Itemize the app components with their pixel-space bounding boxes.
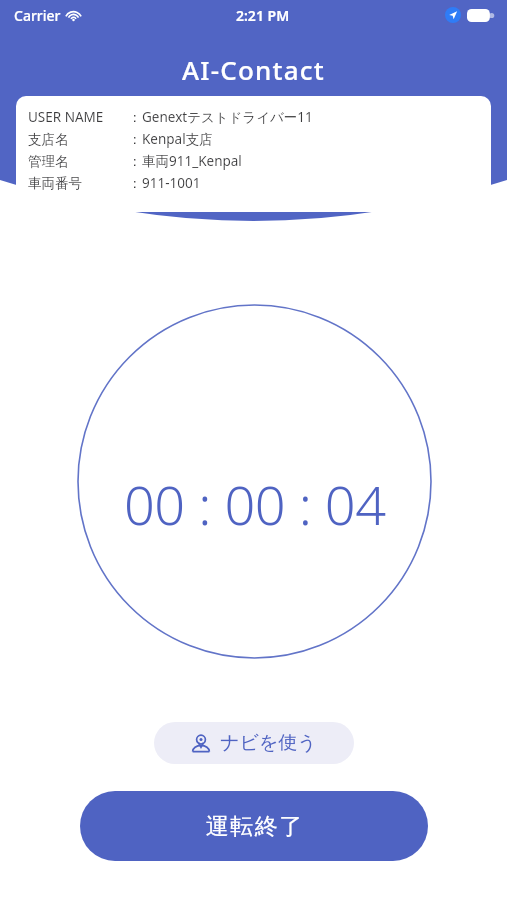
staticText: Kenpal支店: [142, 130, 213, 148]
staticText: ：: [128, 131, 142, 148]
button[interactable]: Use navigation: [154, 722, 354, 764]
staticText: 管理名: [28, 153, 69, 170]
staticText: 00 : 00 : 04: [124, 467, 386, 541]
staticText: Genextテストドライバー11: [142, 108, 313, 126]
staticText: 911-1001: [142, 174, 201, 192]
staticText: ：: [128, 175, 142, 192]
staticText: 運転終了: [205, 812, 303, 841]
staticText: Carrier: [14, 6, 61, 25]
other: Use navigation: [191, 733, 211, 753]
staticText: ：: [128, 153, 142, 170]
staticText: ナビを使う: [220, 731, 317, 755]
staticText: ：: [128, 109, 142, 126]
button[interactable]: 運転終了: [80, 791, 428, 861]
button[interactable]: USER NAME: [16, 96, 491, 212]
staticText: 車両番号: [28, 175, 82, 192]
staticText: 2:21 PM: [236, 6, 290, 25]
other: Location active: [445, 7, 461, 23]
staticText: USER NAME: [28, 108, 104, 126]
staticText: AI-Contact: [182, 52, 325, 87]
staticText: 車両911_Kenpal: [142, 152, 242, 170]
staticText: 支店名: [28, 131, 69, 148]
other: Battery: [467, 9, 493, 22]
